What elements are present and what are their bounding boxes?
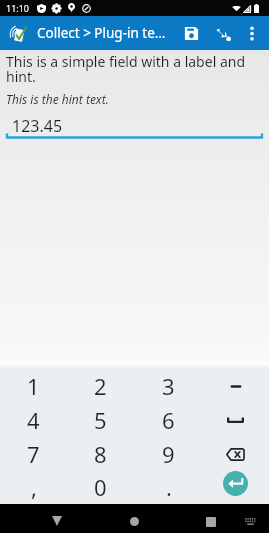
button[interactable]: Enter (202, 470, 269, 504)
staticText: Collect > Plug-in te… (37, 24, 175, 42)
staticText: 4 (27, 405, 40, 435)
button[interactable]: Hide keyboard (30, 504, 84, 533)
button[interactable]: Switch keyboard (238, 504, 263, 533)
staticText: 6 (162, 405, 175, 435)
staticText: 123.45 (12, 115, 63, 137)
staticText: 7 (27, 439, 40, 469)
button[interactable]: 4 (0, 403, 67, 437)
button[interactable]: . (135, 470, 202, 504)
staticText: 0 (94, 472, 107, 502)
button[interactable]: Home (107, 504, 162, 533)
button[interactable]: Space (202, 403, 269, 437)
button[interactable]: Backspace (202, 437, 269, 471)
staticText: , (31, 472, 37, 502)
button[interactable]: Go to prompt (207, 16, 239, 50)
staticText: This is the hint text. (6, 91, 109, 107)
button[interactable]: Minus (202, 369, 269, 403)
button[interactable]: 123.45 (0, 114, 269, 142)
staticText: 8 (94, 439, 107, 469)
staticText: 2 (94, 371, 107, 401)
button[interactable]: 5 (67, 403, 134, 437)
button[interactable]: 6 (135, 403, 202, 437)
button[interactable]: 3 (135, 369, 202, 403)
button[interactable]: Recent apps (184, 504, 238, 533)
staticText: This is a simple field with a label and … (6, 52, 261, 86)
button[interactable]: , (0, 470, 67, 504)
button[interactable]: 7 (0, 437, 67, 471)
button[interactable]: 9 (135, 437, 202, 471)
button[interactable]: Enter (223, 471, 248, 496)
staticText: 9 (162, 439, 175, 469)
staticText: . (166, 472, 172, 502)
staticText: 3 (162, 371, 175, 401)
button[interactable]: 2 (67, 369, 134, 403)
button[interactable]: 8 (67, 437, 134, 471)
staticText: 1 (27, 371, 40, 401)
button[interactable]: More options (239, 16, 265, 50)
button[interactable]: 0 (67, 470, 134, 504)
button[interactable]: 1 (0, 369, 67, 403)
staticText: 5 (94, 405, 107, 435)
button[interactable]: Save form (175, 16, 207, 50)
staticText: 11:10 (6, 2, 30, 14)
